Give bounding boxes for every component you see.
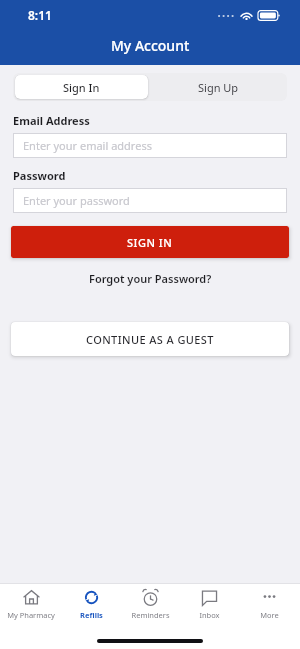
staticText: My Account (111, 36, 190, 55)
button[interactable]: Enter your password (13, 188, 287, 213)
staticText: CONTINUE AS A GUEST (86, 332, 214, 347)
button[interactable]: CONTINUE AS A GUEST (11, 322, 289, 356)
staticText: Forgot your Password? (89, 271, 212, 286)
button[interactable]: Enter your email address (13, 133, 287, 158)
staticText: Sign Up (198, 80, 239, 95)
button[interactable]: Refills (63, 588, 119, 620)
button[interactable]: Sign Up (150, 73, 287, 101)
staticText: Password (13, 168, 66, 183)
button[interactable]: Reminders (122, 588, 178, 620)
staticText: Email Address (13, 113, 90, 128)
staticText: Reminders (131, 610, 170, 620)
button[interactable]: My Pharmacy (3, 588, 59, 620)
staticText: Inbox (199, 610, 220, 620)
staticText: More (260, 610, 279, 620)
button[interactable]: SIGN IN (11, 226, 289, 258)
button[interactable]: More (241, 588, 297, 620)
staticText: My Pharmacy (7, 610, 55, 620)
staticText: SIGN IN (127, 235, 173, 250)
staticText: Enter your password (23, 193, 130, 208)
staticText: Sign In (63, 80, 100, 95)
button[interactable]: Sign In (15, 75, 148, 99)
button[interactable]: Inbox (181, 588, 237, 620)
staticText: 8:11 (28, 7, 52, 23)
staticText: Enter your email address (23, 138, 152, 153)
button[interactable]: Forgot your Password? (0, 271, 300, 286)
staticText: Refills (80, 610, 103, 620)
